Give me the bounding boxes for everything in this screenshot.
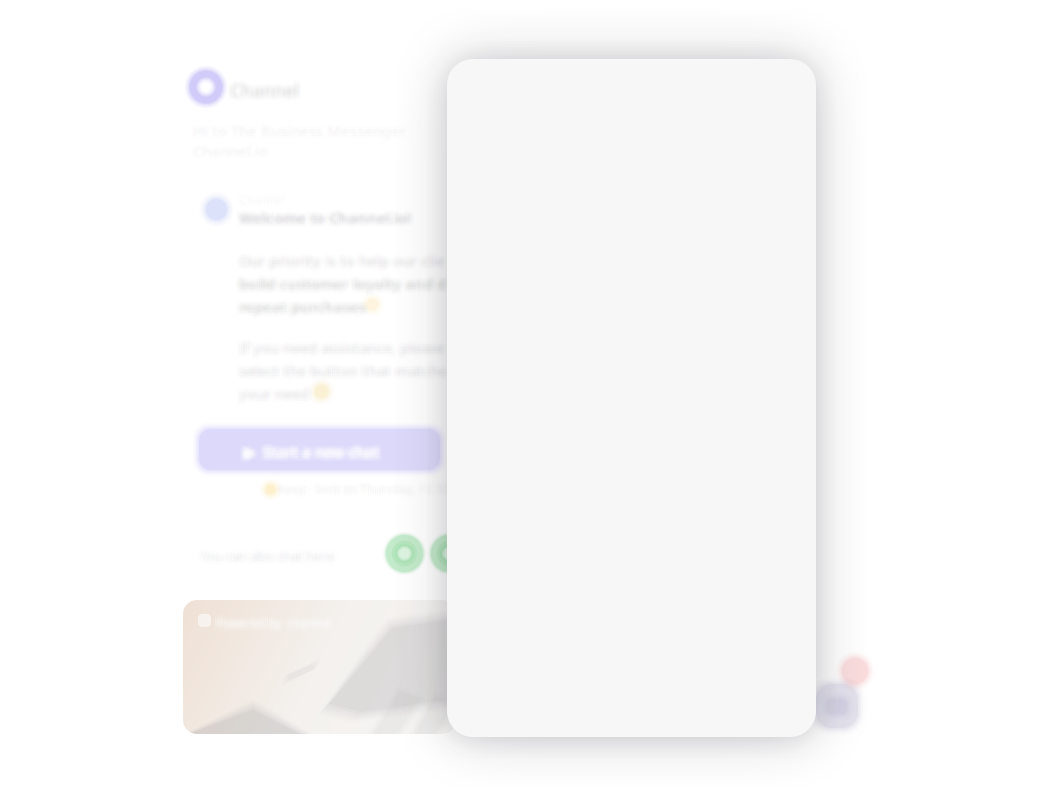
staticText: your need — [243, 384, 313, 403]
staticText: Welcome to Channel.io! — [241, 212, 413, 231]
staticText: your need — [239, 382, 309, 402]
staticText: Keep · Sent on Thursday, 11:33 — [274, 481, 445, 497]
staticText: Our priority is to help our clie — [235, 255, 440, 274]
staticText: You can also chat here — [196, 545, 331, 563]
staticText: If you need assistance, please — [243, 340, 448, 359]
staticText: repeat purchases — [235, 301, 362, 320]
staticText: Channel — [228, 81, 297, 104]
staticText: repeat purchases — [243, 301, 370, 320]
staticText: build customer loyalty and d — [239, 276, 446, 295]
staticText: Channel — [228, 77, 297, 100]
staticText: ▶ Start a new chat — [244, 444, 379, 463]
staticText: build customer loyalty and d — [239, 272, 446, 292]
staticText: ▶ Start a new chat — [248, 440, 383, 460]
staticText: If you need assistance, please — [239, 334, 444, 354]
staticText: Our priority is to help our clie — [239, 249, 444, 269]
staticText: If you need assistance, please — [241, 334, 446, 354]
staticText: Welcome to Channel.io! — [243, 208, 415, 227]
staticText: Channel — [230, 83, 299, 106]
staticText: Powered by channel — [212, 619, 327, 635]
staticText: build customer loyalty and d — [241, 274, 448, 293]
staticText: If you need assistance, please — [237, 334, 442, 354]
staticText: Channel — [232, 81, 301, 104]
staticText: You can also chat here — [198, 549, 333, 567]
staticText: ▶ Start a new chat — [240, 438, 375, 458]
staticText: build customer loyalty and d — [237, 276, 444, 295]
staticText: select the button that matche — [243, 359, 451, 379]
staticText: Our priority is to help our clie — [241, 249, 446, 269]
staticText: select the button that matche — [241, 365, 449, 384]
staticText: Channel — [230, 75, 299, 98]
staticText: ▶ Start a new chat — [248, 444, 383, 463]
staticText: Our priority is to help our clie — [243, 249, 448, 269]
staticText: your need — [235, 382, 305, 402]
staticText: build customer loyalty and d — [243, 272, 450, 292]
staticText: select the button that matche — [243, 357, 451, 377]
button[interactable]: ▶ Start a new chat — [199, 429, 440, 470]
staticText: select the button that matche — [243, 363, 451, 382]
staticText: Our priority is to help our clie — [243, 255, 448, 274]
staticText: Welcome to Channel.io! — [239, 204, 411, 224]
staticText: Powered by channel — [218, 613, 333, 629]
staticText: You can also chat here — [200, 549, 335, 567]
staticText: repeat purchases — [243, 299, 370, 318]
staticText: your need — [241, 380, 311, 400]
staticText: If you need assistance, please — [235, 338, 440, 357]
staticText: your need — [237, 386, 307, 405]
staticText: repeat purchases — [239, 297, 366, 316]
staticText: Our priority is to help our clie — [241, 255, 446, 274]
staticText: select the button that matche — [235, 363, 443, 382]
staticText: Keep · Sent on Thursday, 11:33 — [280, 481, 451, 497]
staticText: Powered by channel — [214, 613, 329, 629]
staticText: Our priority is to help our clie — [235, 247, 440, 267]
staticText: build customer loyalty and d — [237, 274, 444, 293]
staticText: Keep · Sent on Thursday, 11:33 — [276, 485, 447, 501]
staticText: Powered by channel — [218, 617, 333, 633]
staticText: If you need assistance, please — [241, 340, 446, 359]
staticText: build customer loyalty and d — [239, 278, 446, 297]
staticText: You can also chat here — [202, 549, 337, 567]
staticText: your need — [235, 384, 305, 403]
staticText: You can also chat here — [196, 543, 331, 561]
staticText: your need — [243, 382, 313, 402]
staticText: your need — [237, 384, 307, 403]
staticText: build customer loyalty and d — [239, 270, 446, 290]
staticText: ▶ Start a new chat — [248, 446, 383, 465]
staticText: Our priority is to help our clie — [243, 251, 448, 270]
staticText: ▶ Start a new chat — [246, 438, 381, 458]
staticText: Powered by channel — [214, 617, 329, 633]
staticText: your need — [235, 380, 305, 400]
staticText: Channel — [228, 83, 297, 106]
staticText: Channel — [232, 79, 301, 102]
staticText: build customer loyalty and d — [235, 272, 442, 292]
staticText: your need — [237, 382, 307, 402]
staticText: ▶ Start a new chat — [240, 442, 375, 461]
staticText: select the button that matche — [241, 363, 449, 382]
button[interactable]: Open chat — [816, 658, 878, 732]
staticText: build customer loyalty and d — [237, 272, 444, 292]
staticText: You can also chat here — [204, 551, 339, 568]
